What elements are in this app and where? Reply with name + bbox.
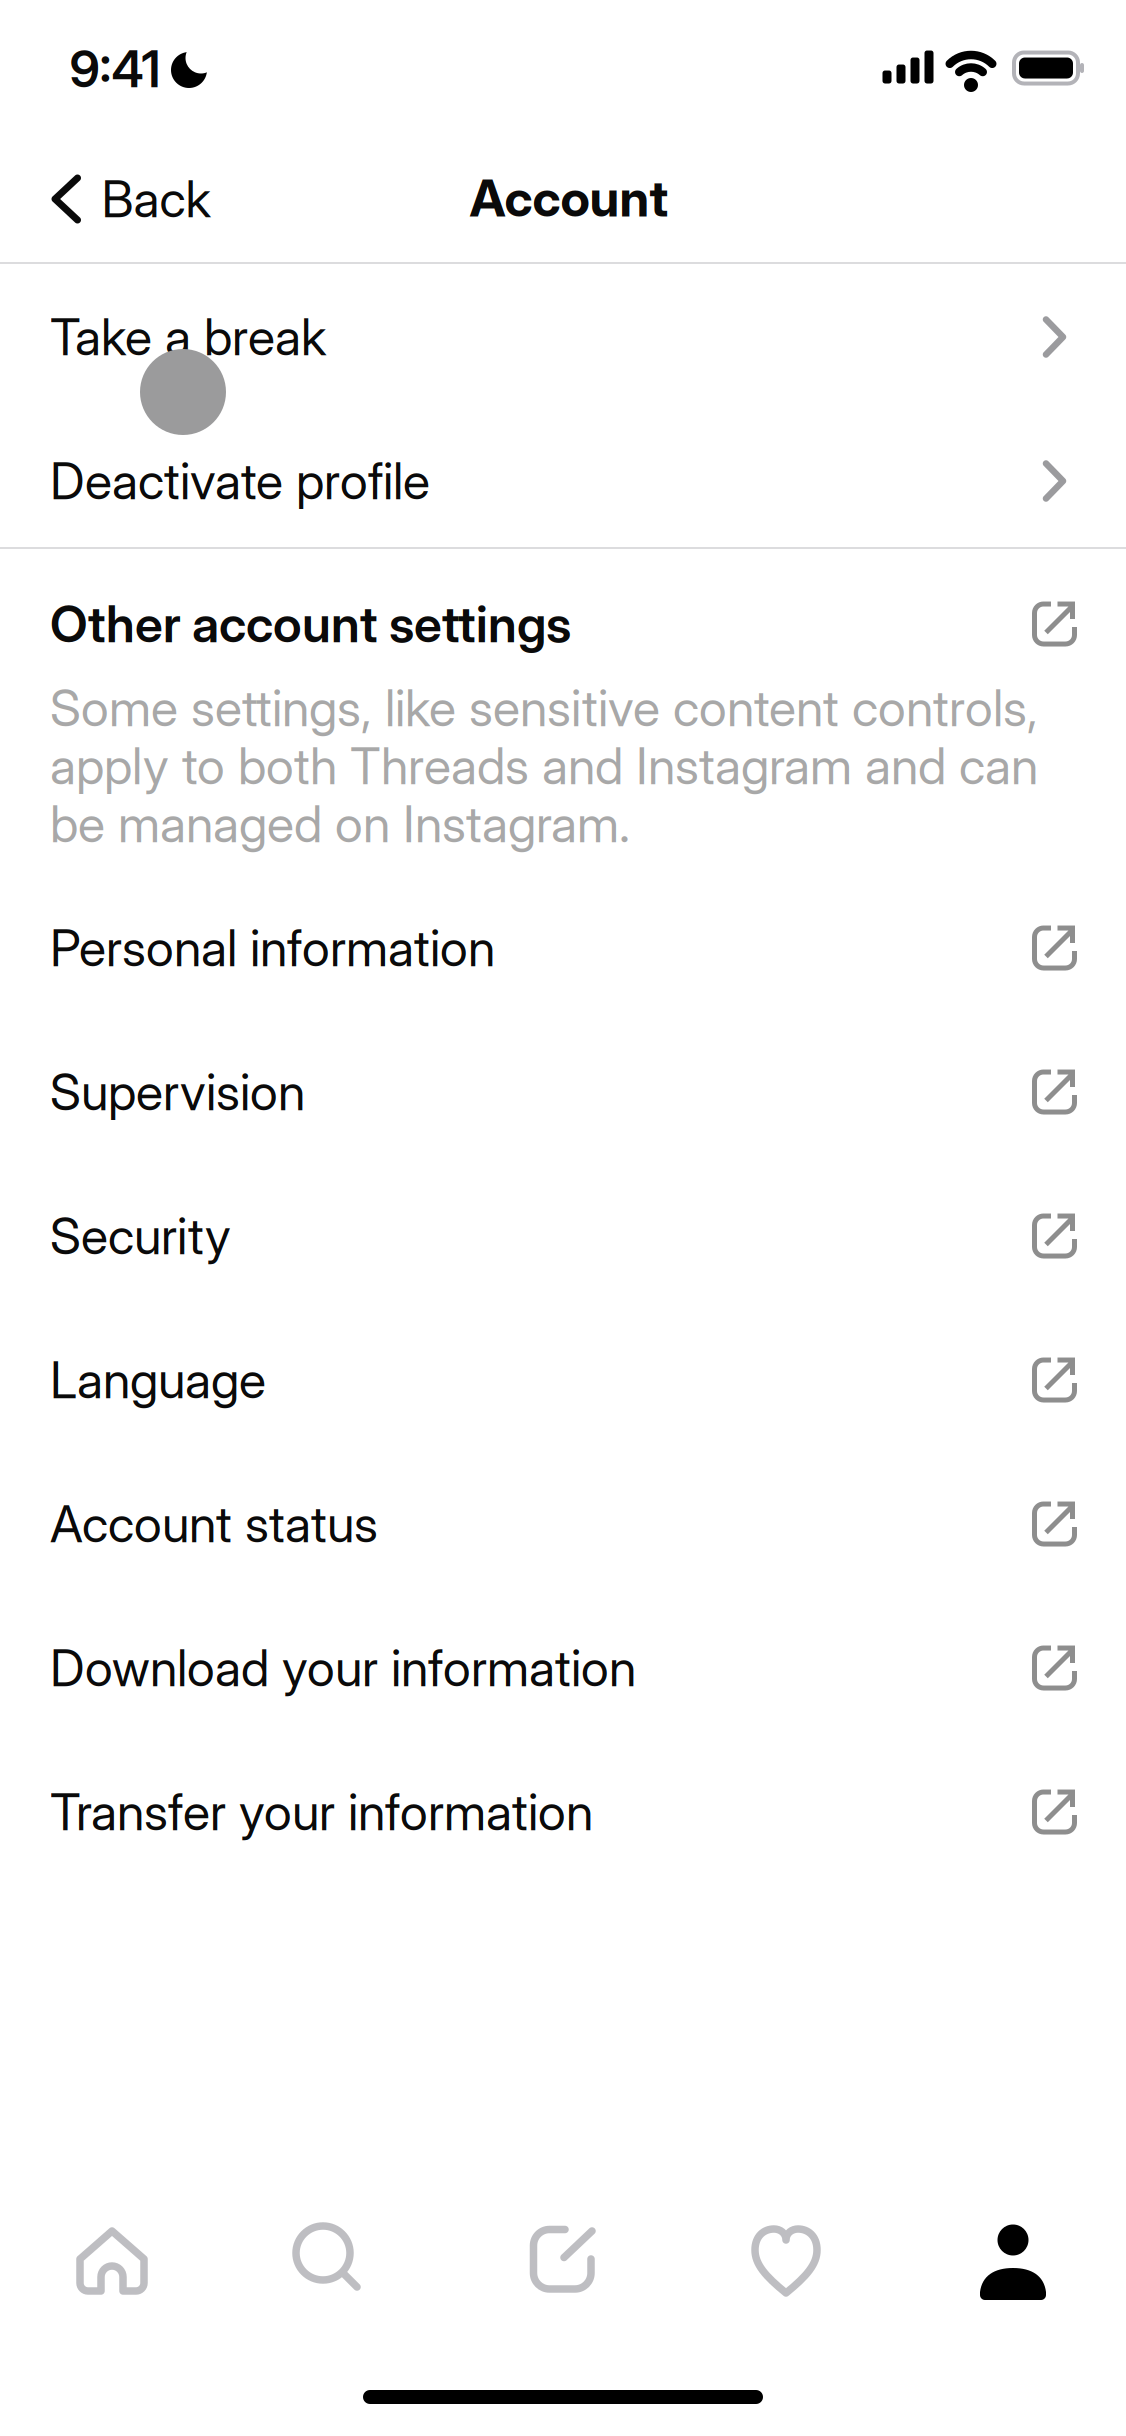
staticText: Account	[469, 167, 668, 229]
staticText: apply to both Threads and Instagram and …	[50, 736, 1038, 796]
button[interactable]: Profile	[980, 2222, 1046, 2296]
button[interactable]: Security	[0, 1165, 1126, 1307]
button[interactable]: Deactivate profile	[0, 410, 1126, 552]
staticText: Other account settings	[50, 594, 571, 654]
button[interactable]: Language	[0, 1309, 1126, 1451]
staticText: Account status	[50, 1494, 378, 1554]
button[interactable]: Transfer your information	[0, 1741, 1126, 1883]
button[interactable]: Personal information	[0, 877, 1126, 1019]
staticText: Back	[101, 169, 210, 229]
button[interactable]: Download your information	[0, 1597, 1126, 1739]
button[interactable]: Back	[51, 169, 210, 229]
button[interactable]: Take a break	[0, 266, 1126, 408]
staticText: Transfer your information	[50, 1782, 593, 1842]
staticText: Language	[50, 1350, 266, 1410]
button[interactable]: Supervision	[0, 1021, 1126, 1163]
staticText: Personal information	[50, 918, 495, 978]
staticText: be managed on Instagram.	[50, 794, 630, 854]
staticText: Deactivate profile	[50, 451, 430, 511]
button[interactable]: Search	[293, 2225, 361, 2291]
button[interactable]: Home	[76, 2227, 148, 2295]
staticText: Some settings, like sensitive content co…	[50, 678, 1038, 738]
staticText: 9:41	[69, 39, 160, 99]
button[interactable]: Account status	[0, 1453, 1126, 1595]
button[interactable]: Other account settings	[0, 553, 1126, 695]
button[interactable]: New thread	[527, 2224, 599, 2296]
staticText: Security	[50, 1206, 231, 1266]
button[interactable]: Activity	[753, 2226, 819, 2296]
staticText: Take a break	[50, 307, 326, 367]
staticText: Download your information	[50, 1638, 636, 1698]
staticText: Supervision	[50, 1062, 305, 1122]
